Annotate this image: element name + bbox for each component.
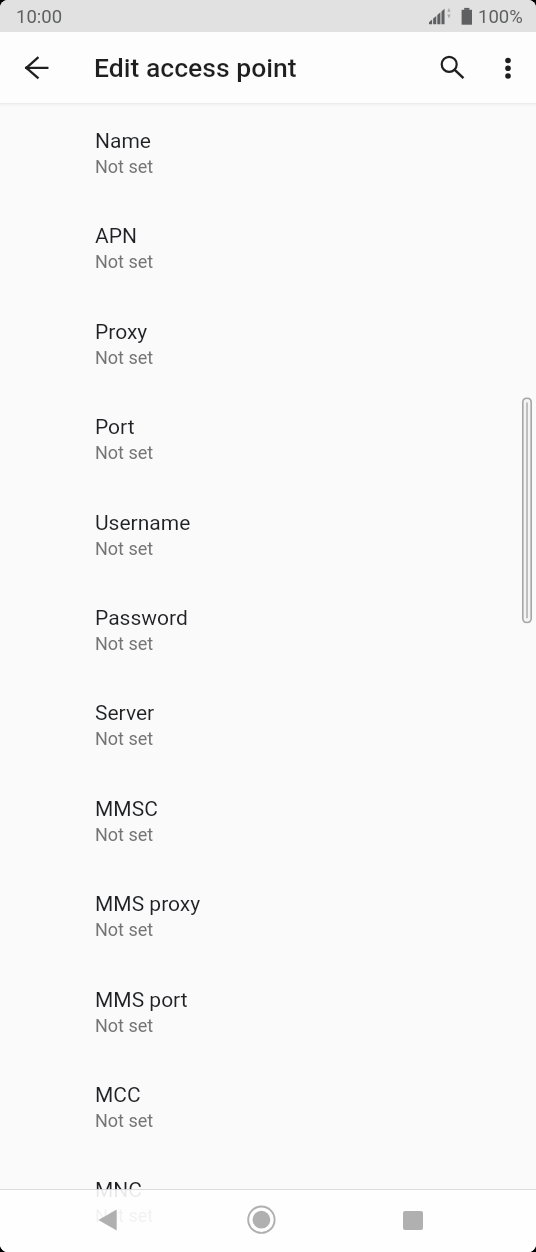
staticText: MNC xyxy=(95,1178,142,1203)
button[interactable]: MMS proxy xyxy=(0,888,536,983)
button[interactable]: Username xyxy=(0,507,536,602)
staticText: Edit access point xyxy=(94,52,297,83)
button[interactable]: Server xyxy=(0,697,536,792)
staticText: Username xyxy=(95,511,191,536)
staticText: Not set xyxy=(95,728,154,749)
button[interactable]: Back xyxy=(15,45,60,90)
button[interactable]: Recents xyxy=(389,1195,438,1244)
staticText: MMS port xyxy=(95,988,188,1013)
button[interactable]: MMS port xyxy=(0,984,536,1079)
staticText: APN xyxy=(95,224,137,249)
staticText: Not set xyxy=(95,1205,154,1226)
staticText: Not set xyxy=(95,919,154,940)
staticText: Not set xyxy=(95,538,154,559)
button[interactable]: Search xyxy=(426,45,472,91)
staticText: Not set xyxy=(95,1015,154,1036)
staticText: 100% xyxy=(478,6,523,28)
button[interactable]: APN xyxy=(0,220,536,315)
staticText: Not set xyxy=(95,824,154,845)
button[interactable]: MNC xyxy=(0,1174,536,1252)
staticText: Not set xyxy=(95,633,154,654)
button[interactable]: MMSC xyxy=(0,793,536,888)
staticText: 10:00 xyxy=(16,6,63,28)
staticText: Not set xyxy=(95,156,154,177)
button[interactable]: MCC xyxy=(0,1079,536,1174)
staticText: MMSC xyxy=(95,797,158,822)
button[interactable]: Port xyxy=(0,411,536,506)
staticText: Not set xyxy=(95,1110,154,1131)
staticText: Name xyxy=(95,129,151,154)
staticText: Proxy xyxy=(95,320,148,345)
button[interactable]: Home xyxy=(237,1195,286,1244)
staticText: Password xyxy=(95,606,188,631)
staticText: Not set xyxy=(95,251,154,272)
button[interactable]: Back xyxy=(83,1195,132,1244)
staticText: Port xyxy=(95,415,135,440)
button[interactable]: Password xyxy=(0,602,536,697)
staticText: Not set xyxy=(95,347,154,368)
staticText: MCC xyxy=(95,1083,141,1108)
staticText: Server xyxy=(95,701,155,726)
button[interactable]: Proxy xyxy=(0,316,536,411)
button[interactable]: More options xyxy=(484,45,530,91)
staticText: MMS proxy xyxy=(95,892,201,917)
staticText: Not set xyxy=(95,442,154,463)
button[interactable]: Name xyxy=(0,125,536,220)
